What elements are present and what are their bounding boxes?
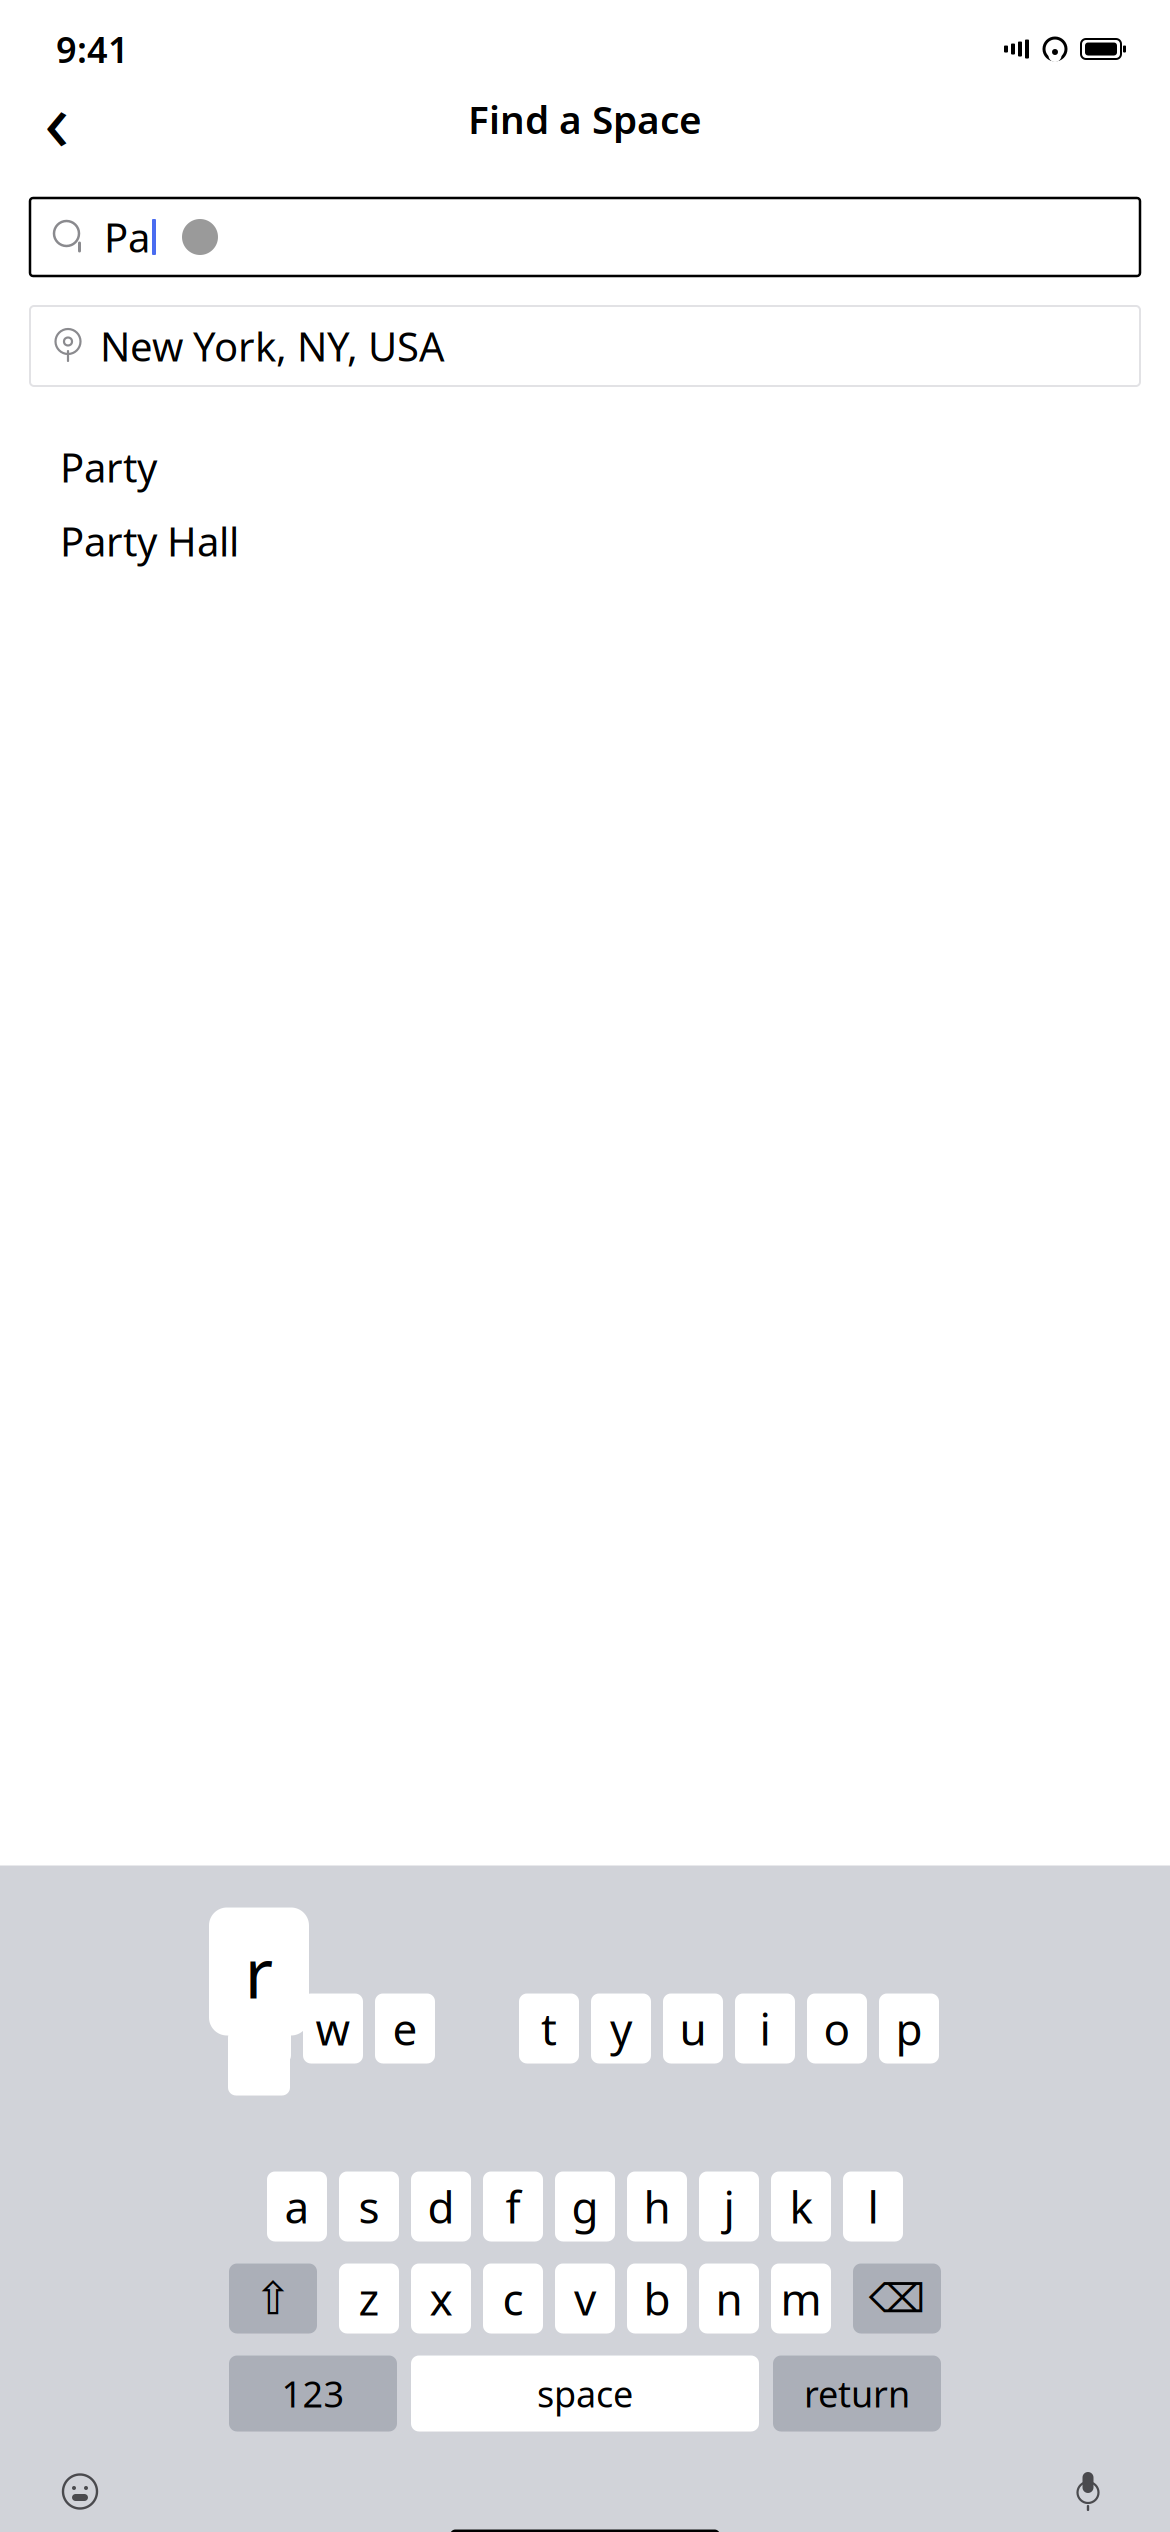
staticText: 123 xyxy=(281,2370,344,2417)
staticText: ‹ xyxy=(44,64,70,174)
staticText: ⇧ xyxy=(254,2273,292,2324)
staticText: m xyxy=(780,2269,821,2328)
button[interactable]: a xyxy=(267,2171,327,2241)
staticText: a xyxy=(284,2177,309,2236)
button[interactable]: q xyxy=(231,1993,291,2063)
button[interactable]: y xyxy=(591,1993,651,2063)
staticText: return xyxy=(804,2370,910,2417)
staticText: s xyxy=(358,2177,379,2236)
button[interactable]: c xyxy=(483,2263,543,2333)
staticText: h xyxy=(643,2177,670,2236)
button[interactable]: Dictation xyxy=(1058,2461,1118,2521)
staticText: y xyxy=(610,1999,632,2058)
staticText: Party xyxy=(60,440,157,493)
button[interactable]: s xyxy=(339,2171,399,2241)
staticText: g xyxy=(571,2177,598,2236)
button[interactable]: New York, NY, USA xyxy=(30,306,1140,386)
button[interactable]: h xyxy=(627,2171,687,2241)
button[interactable]: Delete xyxy=(853,2263,941,2333)
staticText: f xyxy=(505,2177,520,2236)
button[interactable]: j xyxy=(699,2171,759,2241)
button[interactable]: Party Hall xyxy=(30,504,1140,578)
staticText: space xyxy=(537,2370,633,2417)
button[interactable]: g xyxy=(555,2171,615,2241)
button[interactable]: Emoji xyxy=(50,2461,110,2521)
button[interactable]: x xyxy=(411,2263,471,2333)
staticText: i xyxy=(759,1999,770,2058)
staticText: ⌫ xyxy=(868,2276,925,2321)
staticText: Pa xyxy=(104,210,150,263)
staticText: e xyxy=(392,1999,417,2058)
button[interactable]: v xyxy=(555,2263,615,2333)
button[interactable]: w xyxy=(303,1993,363,2063)
staticText: l xyxy=(867,2177,878,2236)
staticText: Find a Space xyxy=(468,93,702,145)
staticText: x xyxy=(429,2269,452,2328)
staticText: v xyxy=(574,2269,596,2328)
button[interactable]: Party xyxy=(30,430,1140,504)
button[interactable]: f xyxy=(483,2171,543,2241)
staticText: w xyxy=(315,1999,350,2058)
staticText: p xyxy=(895,1999,922,2058)
button[interactable]: p xyxy=(879,1993,939,2063)
button[interactable]: n xyxy=(699,2263,759,2333)
staticText: 9:41 xyxy=(56,25,129,73)
button[interactable]: z xyxy=(339,2263,399,2333)
button[interactable]: Back xyxy=(28,90,86,148)
staticText: d xyxy=(427,2177,454,2236)
button[interactable]: Shift xyxy=(229,2263,317,2333)
button[interactable]: space xyxy=(411,2355,759,2431)
staticText: j xyxy=(723,2177,734,2236)
button[interactable]: u xyxy=(663,1993,723,2063)
staticText: c xyxy=(502,2269,523,2328)
staticText: r xyxy=(244,1925,273,2018)
button[interactable]: l xyxy=(843,2171,903,2241)
button[interactable]: e xyxy=(375,1993,435,2063)
button[interactable]: m xyxy=(771,2263,831,2333)
staticText: o xyxy=(823,1999,850,2058)
button[interactable]: 123 xyxy=(229,2355,397,2431)
staticText: k xyxy=(789,2177,812,2236)
button[interactable]: t xyxy=(519,1993,579,2063)
staticText: b xyxy=(643,2269,670,2328)
staticText: z xyxy=(358,2269,379,2328)
button[interactable]: b xyxy=(627,2263,687,2333)
button[interactable]: Pa xyxy=(30,198,1140,276)
staticText: t xyxy=(541,1999,557,2058)
staticText: Party Hall xyxy=(60,514,239,567)
staticText: New York, NY, USA xyxy=(100,319,445,372)
button[interactable]: return xyxy=(773,2355,941,2431)
staticText: u xyxy=(679,1999,706,2058)
button[interactable]: i xyxy=(735,1993,795,2063)
staticText: n xyxy=(715,2269,742,2328)
button[interactable]: k xyxy=(771,2171,831,2241)
button[interactable]: o xyxy=(807,1993,867,2063)
button[interactable]: d xyxy=(411,2171,471,2241)
